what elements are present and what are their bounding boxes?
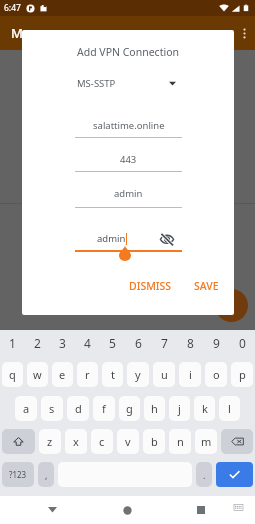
button[interactable]: n	[169, 429, 191, 454]
button[interactable]: w	[27, 362, 48, 387]
button[interactable]: 8	[177, 332, 203, 354]
button[interactable]: 2	[25, 332, 50, 354]
button[interactable]: v	[117, 429, 139, 454]
staticText: 0	[239, 335, 246, 351]
button[interactable]: Back	[38, 496, 66, 524]
staticText: v	[125, 434, 131, 449]
button[interactable]: admin	[75, 184, 182, 202]
button[interactable]: Home	[113, 496, 141, 524]
staticText: DISMISS	[129, 279, 172, 293]
button[interactable]: Recents	[187, 496, 215, 524]
staticText: p	[239, 367, 246, 382]
button[interactable]: .	[196, 462, 212, 487]
button[interactable]: y	[127, 362, 149, 387]
staticText: y	[135, 367, 141, 382]
staticText: c	[99, 434, 105, 449]
button[interactable]: z	[39, 429, 61, 454]
button[interactable]: d	[67, 396, 89, 421]
staticText: h	[151, 401, 158, 416]
button[interactable]: MS-SSTP	[77, 73, 176, 93]
button[interactable]: l	[219, 396, 240, 421]
staticText: 1	[9, 335, 16, 351]
button[interactable]: f	[93, 396, 115, 421]
button[interactable]: m	[195, 429, 217, 454]
staticText: f	[102, 401, 106, 416]
button[interactable]: j	[169, 396, 190, 421]
button[interactable]: ?123	[2, 462, 34, 487]
staticText: ?123	[9, 469, 27, 480]
staticText: q	[9, 367, 16, 382]
button[interactable]: Backspace	[221, 429, 253, 454]
button[interactable]: ,	[38, 462, 54, 487]
button[interactable]: 4	[75, 332, 100, 354]
button[interactable]: More options	[233, 16, 255, 50]
staticText: s	[49, 401, 55, 416]
button[interactable]: b	[143, 429, 165, 454]
button[interactable]: p	[231, 362, 253, 387]
button[interactable]: 3	[50, 332, 75, 354]
button[interactable]: r	[77, 362, 98, 387]
button[interactable]: 1	[0, 332, 25, 354]
button[interactable]: Add VPN	[215, 289, 248, 322]
staticText: admin	[97, 232, 126, 245]
button[interactable]: Switch keyboard	[227, 496, 249, 518]
button[interactable]: SAVE	[184, 275, 229, 297]
button[interactable]: g	[119, 396, 140, 421]
staticText: 6	[135, 335, 142, 351]
button[interactable]: Toggle password visibility	[158, 230, 176, 248]
button[interactable]: h	[144, 396, 165, 421]
button[interactable]: 0	[229, 332, 255, 354]
staticText: z	[47, 434, 53, 449]
staticText: M	[11, 24, 23, 42]
staticText: i	[189, 367, 192, 382]
staticText: MS-SSTP	[77, 77, 116, 90]
button[interactable]: DISMISS	[119, 275, 181, 297]
staticText: 4	[84, 335, 91, 351]
staticText: d	[75, 401, 82, 416]
button[interactable]: u	[153, 362, 175, 387]
staticText: r	[85, 367, 90, 382]
button[interactable]: q	[2, 362, 23, 387]
button[interactable]: c	[91, 429, 113, 454]
staticText: .	[203, 469, 206, 481]
staticText: salattime.online	[93, 119, 165, 132]
staticText: l	[228, 401, 231, 416]
button[interactable]: k	[194, 396, 215, 421]
button[interactable]: 443	[75, 150, 182, 168]
button[interactable]: x	[65, 429, 87, 454]
staticText: u	[161, 367, 168, 382]
staticText: k	[202, 401, 208, 416]
staticText: m	[201, 434, 212, 449]
staticText: admin	[114, 187, 143, 200]
staticText: o	[213, 367, 220, 382]
staticText: e	[59, 367, 66, 382]
button[interactable]: t	[102, 362, 123, 387]
button[interactable]: i	[179, 362, 201, 387]
button[interactable]: e	[52, 362, 73, 387]
staticText: j	[178, 401, 181, 416]
button[interactable]: salattime.online	[75, 116, 182, 134]
staticText: t	[111, 367, 115, 382]
button[interactable]: Shift	[2, 429, 35, 454]
staticText: 6:47	[4, 2, 21, 14]
staticText: 7	[161, 335, 168, 351]
staticText: Add VPN Connection	[77, 45, 179, 59]
staticText: a	[23, 401, 30, 416]
staticText: ,	[45, 469, 48, 481]
staticText: x	[73, 434, 79, 449]
button[interactable]: Enter	[216, 462, 253, 487]
button[interactable]: 6	[125, 332, 151, 354]
button[interactable]: s	[41, 396, 63, 421]
button[interactable]: 5	[100, 332, 125, 354]
staticText: SAVE	[194, 279, 219, 293]
staticText: w	[33, 367, 42, 382]
button[interactable]: 9	[203, 332, 229, 354]
staticText: b	[151, 434, 158, 449]
staticText: 8	[187, 335, 194, 351]
button[interactable]: a	[15, 396, 37, 421]
button[interactable]: 7	[151, 332, 177, 354]
staticText: 9	[213, 335, 220, 351]
button[interactable]: o	[205, 362, 227, 387]
staticText: 3	[59, 335, 66, 351]
